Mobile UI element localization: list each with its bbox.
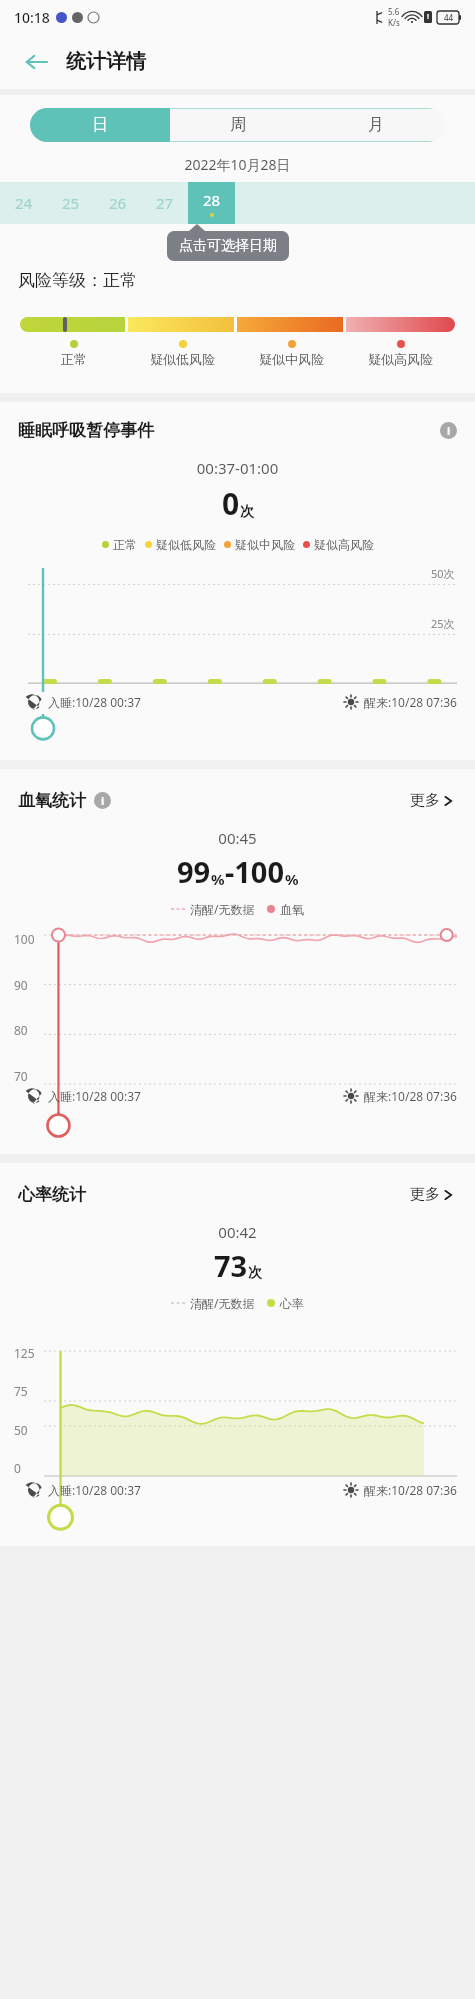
staticText: 24 xyxy=(15,193,33,213)
staticText: 心率 xyxy=(280,1296,304,1311)
staticText: -100 xyxy=(225,852,285,891)
staticText: 50 xyxy=(14,1422,28,1438)
staticText: 疑似中风险 xyxy=(235,537,295,552)
staticText: 清醒/无数据 xyxy=(190,1295,255,1311)
staticText: 入睡:10/28 00:37 xyxy=(48,694,141,710)
staticText: 血氧统计 xyxy=(18,790,86,811)
staticText: 入睡:10/28 00:37 xyxy=(48,1482,141,1498)
button[interactable]: 更多 xyxy=(406,1181,457,1208)
staticText: 90 xyxy=(14,977,28,993)
staticText: 心率统计 xyxy=(18,1184,86,1205)
staticText: 00:45 xyxy=(0,828,475,848)
button[interactable]: 25 xyxy=(47,182,94,224)
staticText: 更多 xyxy=(410,791,440,810)
button[interactable]: 27 xyxy=(141,182,188,224)
staticText: 疑似高风险 xyxy=(368,351,433,367)
button[interactable]: 更多 xyxy=(406,787,457,814)
staticText: 70 xyxy=(14,1068,28,1084)
staticText: ! xyxy=(427,12,429,22)
staticText: i xyxy=(447,423,451,438)
staticText: 28 xyxy=(203,190,221,210)
button[interactable]: Back xyxy=(16,42,56,82)
button[interactable]: 26 xyxy=(94,182,141,224)
staticText: 00:37-01:00 xyxy=(0,458,475,478)
staticText: 疑似中风险 xyxy=(259,351,324,367)
staticText: 疑似低风险 xyxy=(150,351,215,367)
staticText: 25次 xyxy=(431,616,455,631)
staticText: 125 xyxy=(14,1345,35,1361)
button[interactable]: 月 xyxy=(307,108,445,142)
staticText: 0 xyxy=(222,483,240,524)
staticText: 疑似低风险 xyxy=(156,537,216,552)
staticText: 73 xyxy=(214,1246,248,1285)
staticText: 血氧 xyxy=(280,902,304,917)
staticText: i xyxy=(101,793,105,808)
staticText: 80 xyxy=(14,1022,28,1038)
staticText: 风险等级：正常 xyxy=(18,270,137,291)
staticText: 27 xyxy=(156,193,174,213)
staticText: 5.6 xyxy=(388,6,400,17)
staticText: 醒来:10/28 07:36 xyxy=(364,1482,457,1498)
button[interactable]: 日 xyxy=(30,108,169,142)
staticText: 日 xyxy=(92,115,108,135)
staticText: 0 xyxy=(14,1460,21,1476)
staticText: K/s xyxy=(388,17,400,28)
button[interactable]: Info xyxy=(440,422,457,439)
staticText: 99 xyxy=(177,852,211,891)
staticText: 2022年10月28日 xyxy=(0,155,475,174)
staticText: 50次 xyxy=(431,566,455,581)
staticText: 75 xyxy=(14,1383,28,1399)
staticText: 正常 xyxy=(61,351,87,367)
staticText: 26 xyxy=(109,193,127,213)
staticText: 睡眠呼吸暂停事件 xyxy=(18,420,154,441)
staticText: 点击可选择日期 xyxy=(179,237,277,255)
staticText: 统计详情 xyxy=(66,49,146,74)
staticText: 次 xyxy=(240,503,254,521)
staticText: 44 xyxy=(444,12,454,23)
button[interactable]: 周 xyxy=(169,108,307,142)
staticText: 周 xyxy=(230,115,246,135)
staticText: 月 xyxy=(368,115,384,135)
staticText: 正常 xyxy=(113,537,137,552)
staticText: 10:18 xyxy=(14,8,50,27)
staticText: 00:42 xyxy=(0,1222,475,1242)
staticText: % xyxy=(285,869,299,889)
staticText: 醒来:10/28 07:36 xyxy=(364,694,457,710)
button[interactable]: 24 xyxy=(0,182,47,224)
staticText: % xyxy=(211,869,225,889)
staticText: 醒来:10/28 07:36 xyxy=(364,1088,457,1104)
staticText: 疑似高风险 xyxy=(314,537,374,552)
staticText: 更多 xyxy=(410,1185,440,1204)
button[interactable]: 28 xyxy=(188,182,235,224)
staticText: 清醒/无数据 xyxy=(190,901,255,917)
staticText: 25 xyxy=(62,193,80,213)
staticText: 100 xyxy=(14,931,35,947)
staticText: 次 xyxy=(248,1264,262,1282)
button[interactable]: Info xyxy=(94,792,111,809)
staticText: 入睡:10/28 00:37 xyxy=(48,1088,141,1104)
